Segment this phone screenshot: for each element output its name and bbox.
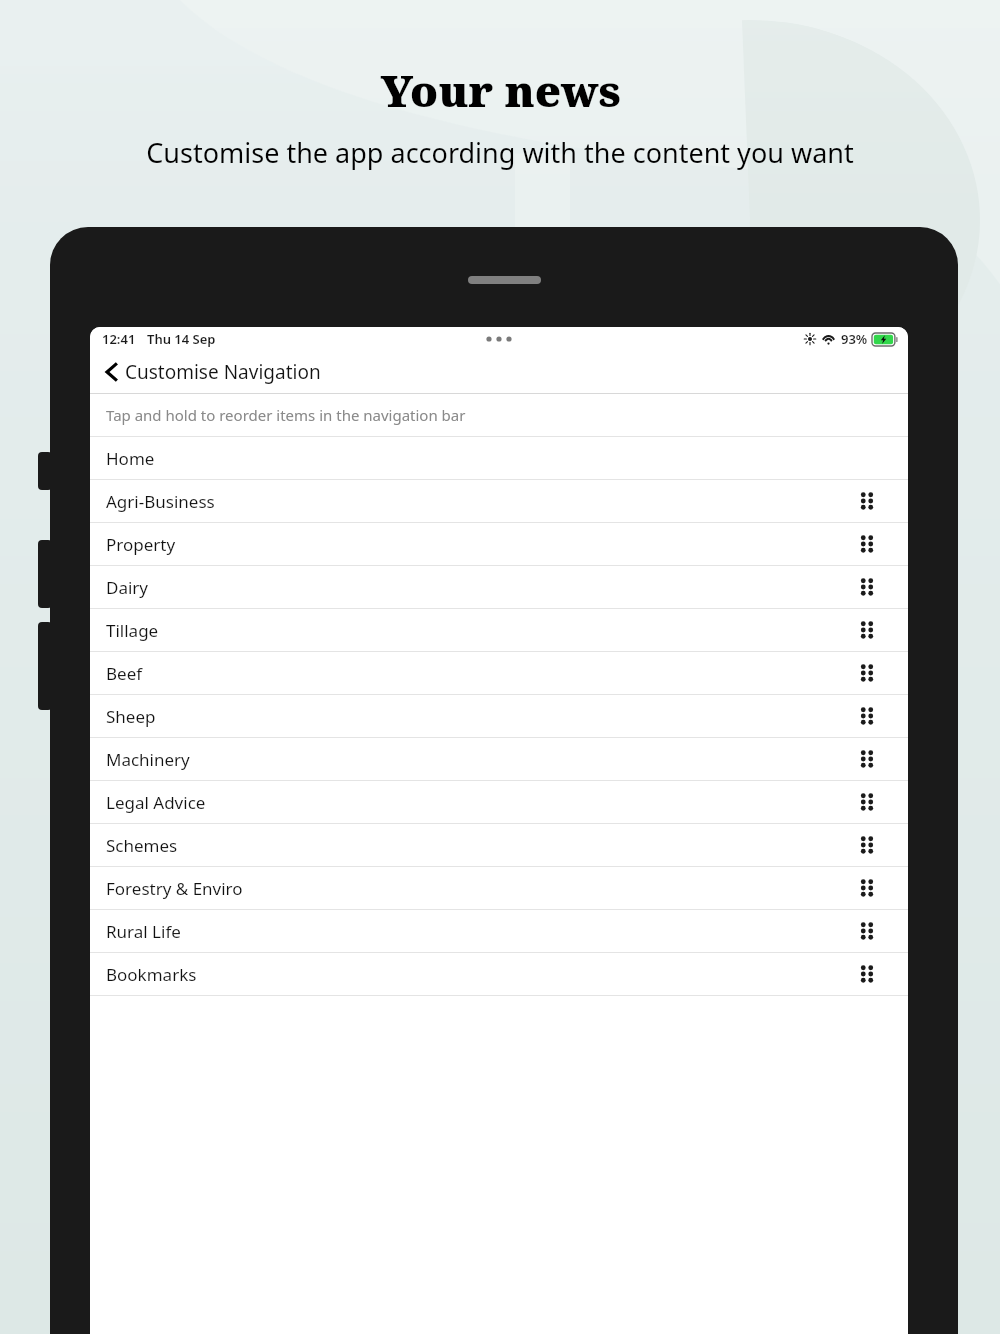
staticText: Customise Navigation bbox=[125, 359, 321, 385]
other: Reorder Agri-Business bbox=[856, 488, 878, 514]
staticText: Tillage bbox=[106, 619, 159, 642]
staticText: Rural Life bbox=[106, 920, 181, 943]
staticText: Sheep bbox=[106, 705, 156, 728]
other: Reorder Sheep bbox=[856, 703, 878, 729]
other: Reorder Dairy bbox=[856, 574, 878, 600]
staticText: Schemes bbox=[106, 834, 178, 857]
staticText: Customise the app according with the con… bbox=[146, 134, 854, 171]
other: Reorder Tillage bbox=[856, 617, 878, 643]
button[interactable]: Machinery bbox=[90, 738, 908, 780]
other: Reorder Forestry & Enviro bbox=[856, 875, 878, 901]
staticText: Dairy bbox=[106, 576, 149, 599]
button[interactable]: Home bbox=[90, 437, 908, 479]
other: Reorder Machinery bbox=[856, 746, 878, 772]
button[interactable]: Property bbox=[90, 523, 908, 565]
staticText: Thu 14 Sep bbox=[147, 330, 216, 348]
staticText: 93% bbox=[841, 330, 868, 348]
staticText: Bookmarks bbox=[106, 963, 197, 986]
staticText: 12:41 bbox=[102, 330, 136, 348]
other: Reorder Bookmarks bbox=[856, 961, 878, 987]
staticText: Tap and hold to reorder items in the nav… bbox=[106, 405, 466, 425]
staticText: Home bbox=[106, 447, 155, 470]
button[interactable]: Sheep bbox=[90, 695, 908, 737]
staticText: Beef bbox=[106, 662, 143, 685]
button[interactable]: Legal Advice bbox=[90, 781, 908, 823]
staticText: Machinery bbox=[106, 748, 190, 771]
staticText: Agri-Business bbox=[106, 490, 215, 513]
button[interactable]: Agri-Business bbox=[90, 480, 908, 522]
button[interactable]: Forestry & Enviro bbox=[90, 867, 908, 909]
button[interactable]: Rural Life bbox=[90, 910, 908, 952]
other: Reorder Property bbox=[856, 531, 878, 557]
staticText: Property bbox=[106, 533, 176, 556]
other: Reorder Beef bbox=[856, 660, 878, 686]
staticText: Forestry & Enviro bbox=[106, 877, 243, 900]
other: Reorder Legal Advice bbox=[856, 789, 878, 815]
button[interactable]: Beef bbox=[90, 652, 908, 694]
other: Reorder Schemes bbox=[856, 832, 878, 858]
button[interactable]: Dairy bbox=[90, 566, 908, 608]
staticText: Legal Advice bbox=[106, 791, 206, 814]
other: Back bbox=[104, 362, 119, 382]
button[interactable]: Schemes bbox=[90, 824, 908, 866]
staticText: Your news bbox=[380, 60, 621, 120]
button[interactable]: Bookmarks bbox=[90, 953, 908, 995]
other: Reorder Rural Life bbox=[856, 918, 878, 944]
button[interactable]: Tillage bbox=[90, 609, 908, 651]
button[interactable]: Back bbox=[90, 351, 908, 393]
